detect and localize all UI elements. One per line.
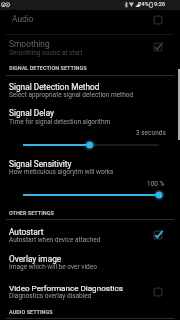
staticText: OTHER SETTINGS [9,210,54,216]
staticText: 24% [138,1,149,8]
button[interactable] [0,10,180,34]
staticText: Select appropriate signal detection meth… [9,91,134,99]
staticText: 3 seconds [136,129,166,137]
button[interactable]: Slider [23,189,159,201]
button[interactable]: Toggle setting [149,38,167,56]
staticText: Signal Delay [9,108,55,118]
staticText: Autostart [9,227,44,237]
staticText: 100 % [147,180,165,188]
button[interactable] [0,78,180,102]
staticText: Time for signal detection algorithm [9,118,111,126]
staticText: Smoothing [9,39,50,49]
staticText: How meticulous algorytm will works [9,168,114,176]
button[interactable]: Slider [23,139,159,151]
staticText: Diagnostics overlay disabled [9,292,92,300]
staticText: Video Performance Diagnostics [9,283,123,292]
staticText: AUDIO SETTINGS [9,309,53,315]
staticText: Audio [12,14,34,24]
button[interactable] [0,279,180,303]
button[interactable] [0,35,180,57]
button[interactable]: Toggle setting [149,226,167,244]
button[interactable] [0,251,180,275]
button[interactable] [0,223,180,247]
staticText: Signal Detection Method [9,82,100,92]
staticText: SIGNAL DETECTION SETTINGS [9,65,87,71]
button[interactable]: Toggle setting [149,11,167,29]
button[interactable]: Toggle setting [149,283,167,301]
staticText: Autostart when device attached [9,236,101,244]
staticText: Overlay image [9,254,62,264]
staticText: Image which will be over video [9,263,97,271]
button[interactable] [0,156,180,200]
staticText: Signal Sensitivity [9,159,72,169]
staticText: 9:26 [154,1,166,8]
staticText: Smoothing sound at start [9,49,83,57]
button[interactable] [0,105,180,149]
